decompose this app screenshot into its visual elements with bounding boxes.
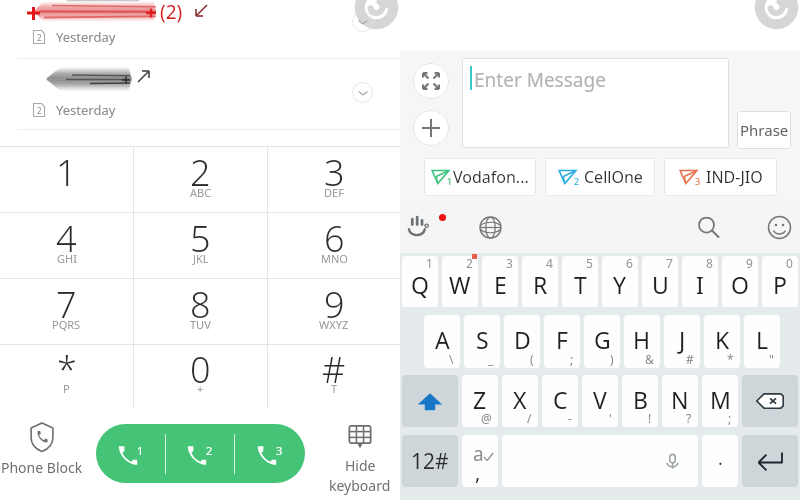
- staticText: N: [671, 384, 689, 415]
- button[interactable]: Add: [413, 110, 449, 146]
- button[interactable]: 2: [545, 158, 655, 196]
- button[interactable]: G: [584, 315, 620, 368]
- button[interactable]: .: [702, 435, 738, 487]
- button[interactable]: 3: [664, 158, 777, 196]
- staticText: Hide: [345, 456, 376, 475]
- button[interactable]: Call with SIM 3: [235, 424, 304, 483]
- button[interactable]: [502, 435, 698, 487]
- button[interactable]: X: [502, 375, 538, 427]
- button[interactable]: TouchPal: [405, 213, 432, 240]
- staticText: X: [513, 384, 527, 415]
- staticText: S: [476, 324, 489, 355]
- button[interactable]: Search: [696, 215, 721, 240]
- button[interactable]: A: [424, 315, 460, 368]
- button[interactable]: #: [268, 345, 400, 408]
- button[interactable]: E: [482, 256, 518, 307]
- button[interactable]: N: [662, 375, 698, 427]
- button[interactable]: K: [704, 315, 740, 368]
- button[interactable]: 5: [134, 213, 267, 278]
- button[interactable]: I: [682, 256, 718, 307]
- staticText: O: [731, 269, 749, 300]
- button[interactable]: 1: [0, 147, 133, 212]
- staticText: 2: [190, 148, 211, 197]
- button[interactable]: 7: [0, 279, 133, 344]
- button[interactable]: W: [442, 256, 478, 307]
- button[interactable]: J: [664, 315, 700, 368]
- staticText: 8: [190, 280, 211, 329]
- staticText: C: [553, 384, 568, 415]
- button[interactable]: R: [522, 256, 558, 307]
- button[interactable]: D: [504, 315, 540, 368]
- button[interactable]: 2: [134, 147, 267, 212]
- button[interactable]: Call with SIM 1: [96, 424, 165, 483]
- staticText: JKL: [193, 251, 209, 266]
- button[interactable]: P: [762, 256, 798, 307]
- button[interactable]: V: [582, 375, 618, 427]
- staticText: V: [593, 384, 607, 415]
- staticText: T: [574, 269, 587, 300]
- staticText: Vodafon...: [453, 166, 529, 188]
- staticText: 1: [56, 148, 77, 197]
- staticText: 2: [466, 256, 473, 271]
- button[interactable]: 12#: [402, 435, 458, 487]
- button[interactable]: S: [464, 315, 500, 368]
- staticText: 2: [37, 105, 42, 116]
- button[interactable]: F: [544, 315, 580, 368]
- staticText: Phrase: [740, 120, 789, 140]
- button[interactable]: Shift: [402, 375, 458, 427]
- button[interactable]: Emoji: [767, 215, 792, 240]
- button[interactable]: 9: [268, 279, 400, 344]
- staticText: (: [530, 351, 534, 367]
- button[interactable]: Hide: [320, 423, 400, 494]
- staticText: /: [527, 410, 532, 426]
- button[interactable]: 2: [0, 62, 400, 129]
- button[interactable]: H: [624, 315, 660, 368]
- button[interactable]: Expand: [413, 63, 449, 99]
- staticText: G: [594, 324, 611, 355]
- button[interactable]: 3: [268, 147, 400, 212]
- button[interactable]: Enter: [742, 435, 798, 487]
- staticText: #: [686, 351, 694, 367]
- button[interactable]: 8: [134, 279, 267, 344]
- button[interactable]: 0: [134, 345, 267, 408]
- button[interactable]: L: [744, 315, 780, 368]
- button[interactable]: Language: [478, 215, 503, 240]
- button[interactable]: Z: [462, 375, 498, 427]
- staticText: *: [57, 345, 77, 394]
- staticText: ;: [570, 351, 574, 367]
- button[interactable]: Expand: [352, 82, 373, 103]
- button[interactable]: 4: [0, 213, 133, 278]
- button[interactable]: M: [702, 375, 738, 427]
- button[interactable]: B: [622, 375, 658, 427]
- staticText: WXYZ: [319, 317, 349, 332]
- staticText: _: [488, 351, 494, 367]
- button[interactable]: Expand: [352, 11, 373, 32]
- button[interactable]: *: [0, 345, 133, 408]
- staticText: 4: [546, 256, 553, 271]
- staticText: P: [63, 381, 70, 396]
- button[interactable]: (2): [0, 0, 400, 58]
- staticText: D: [514, 324, 531, 355]
- button[interactable]: Phone Block: [1, 421, 83, 477]
- button[interactable]: Y: [602, 256, 638, 307]
- button[interactable]: 1: [424, 158, 536, 196]
- staticText: DEF: [324, 185, 344, 200]
- button[interactable]: a: [462, 435, 498, 487]
- staticText: 12#: [411, 447, 449, 476]
- button[interactable]: Call with SIM 2: [166, 424, 234, 483]
- staticText: MNO: [321, 251, 348, 266]
- staticText: T: [331, 381, 338, 396]
- button[interactable]: 6: [268, 213, 400, 278]
- button[interactable]: Enter Message: [462, 58, 729, 148]
- button[interactable]: Q: [402, 256, 438, 307]
- button[interactable]: C: [542, 375, 578, 427]
- staticText: B: [633, 384, 648, 415]
- button[interactable]: U: [642, 256, 678, 307]
- button[interactable]: Phrase: [737, 111, 791, 149]
- staticText: Q: [411, 269, 429, 300]
- button[interactable]: T: [562, 256, 598, 307]
- staticText: H: [633, 324, 651, 355]
- button[interactable]: O: [722, 256, 758, 307]
- staticText: 4: [56, 214, 77, 263]
- button[interactable]: Backspace: [742, 375, 798, 427]
